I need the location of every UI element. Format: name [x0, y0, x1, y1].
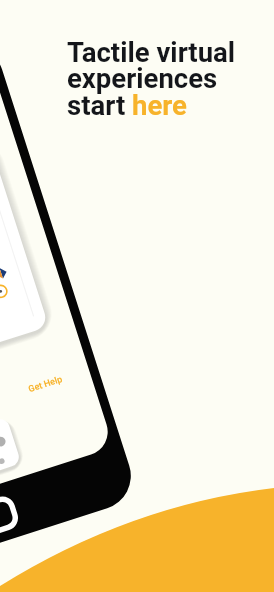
staticText: Tactile virtual experiences start here — [67, 36, 236, 122]
button[interactable]: Get Help — [27, 374, 64, 395]
